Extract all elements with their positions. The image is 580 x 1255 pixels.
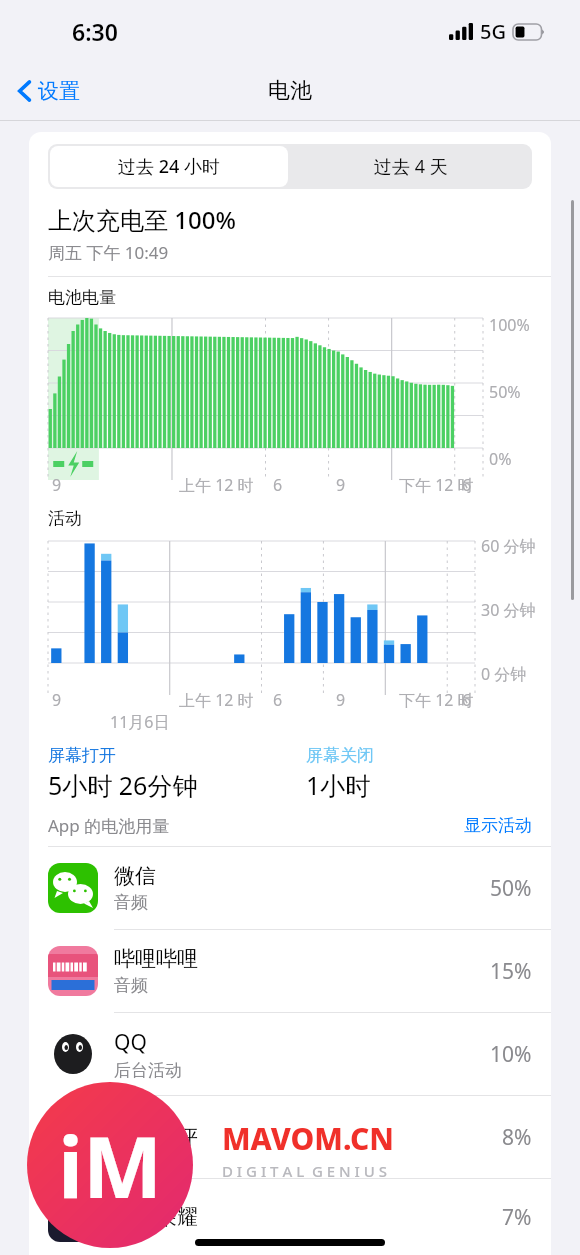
staticText: 屏幕打开	[48, 745, 116, 766]
staticText: 6	[273, 689, 283, 711]
button[interactable]: 过去 4 天	[290, 144, 532, 189]
staticText: 9	[336, 474, 346, 496]
staticText: 8%	[502, 1123, 532, 1152]
staticText: 60 分钟	[481, 535, 536, 557]
staticText: 屏幕关闭	[306, 745, 374, 766]
staticText: 微信	[114, 863, 156, 889]
staticText: 6:30	[72, 16, 118, 47]
staticText: 周五 下午 10:49	[48, 241, 169, 264]
staticText: QQ	[114, 1028, 147, 1057]
staticText: 0%	[489, 448, 512, 470]
staticText: 6	[462, 689, 472, 711]
button[interactable]: App 的电池用量	[29, 814, 551, 837]
staticText: 电池电量	[48, 287, 116, 308]
staticText: 100%	[489, 314, 530, 336]
staticText: 5G	[480, 18, 506, 45]
staticText: 6	[273, 474, 283, 496]
staticText: 过去 4 天	[374, 154, 448, 179]
staticText: 设置	[38, 78, 80, 104]
staticText: 11月6日	[110, 711, 170, 733]
staticText: 6	[462, 474, 472, 496]
button[interactable]: App icon	[29, 1013, 551, 1095]
other: App icon	[48, 1029, 98, 1079]
button[interactable]: 设置	[14, 74, 84, 108]
staticText: 7%	[502, 1203, 532, 1232]
other: App icon	[48, 1112, 98, 1162]
staticText: App 的电池用量	[48, 814, 170, 837]
button[interactable]: App icon	[29, 1179, 551, 1255]
button[interactable]: 过去 24 小时	[50, 146, 288, 187]
staticText: 上午 12 时	[179, 474, 254, 496]
staticText: 下午 12 时	[399, 689, 474, 711]
staticText: 音频	[114, 975, 148, 996]
staticText: 电池	[268, 77, 312, 105]
other: App icon	[48, 1192, 98, 1242]
staticText: 上次充电至 100%	[48, 203, 236, 236]
staticText: 显示活动	[464, 815, 532, 836]
staticText: 9	[336, 689, 346, 711]
staticText: 50%	[489, 381, 521, 403]
staticText: 活动	[48, 508, 82, 529]
staticText: 上午 12 时	[179, 689, 254, 711]
staticText: 王者荣耀	[114, 1204, 198, 1230]
other: App icon	[48, 863, 98, 913]
staticText: 30 分钟	[481, 599, 536, 621]
staticText: 9	[52, 689, 62, 711]
staticText: 50%	[490, 874, 532, 903]
staticText: 10%	[490, 1040, 532, 1069]
staticText: 音频	[114, 892, 148, 913]
staticText: 0 分钟	[481, 663, 527, 685]
staticText: D I G I T A L G E N I U S	[222, 1161, 387, 1181]
staticText: 大众点评	[114, 1124, 198, 1150]
staticText: 9	[52, 474, 62, 496]
other: App icon	[48, 946, 98, 996]
staticText: 过去 24 小时	[118, 154, 220, 179]
staticText: 下午 12 时	[399, 474, 474, 496]
staticText: 5小时 26分钟	[48, 768, 198, 802]
staticText: 1小时	[306, 768, 371, 802]
staticText: MAVOM.CN	[222, 1118, 394, 1159]
staticText: 15%	[490, 957, 532, 986]
staticText: 哔哩哔哩	[114, 946, 198, 972]
staticText: iM	[58, 1108, 163, 1222]
button[interactable]: App icon	[29, 847, 551, 929]
staticText: 后台活动	[114, 1060, 182, 1081]
button[interactable]: App icon	[29, 1096, 551, 1178]
button[interactable]: App icon	[29, 930, 551, 1012]
